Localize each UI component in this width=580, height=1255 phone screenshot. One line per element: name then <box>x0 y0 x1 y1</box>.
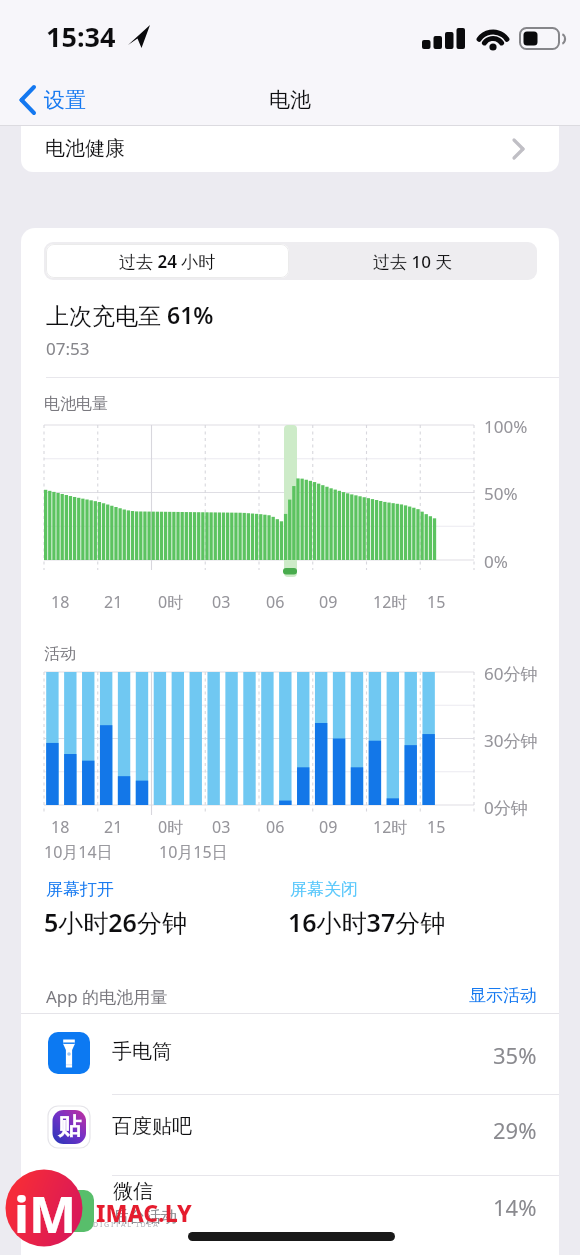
staticText: 18 <box>51 816 70 838</box>
staticText: 电池电量 <box>44 394 108 414</box>
button[interactable] <box>21 1095 559 1175</box>
staticText: 21 <box>104 591 123 613</box>
staticText: 21 <box>104 816 123 838</box>
staticText: 显示活动 <box>469 985 537 1006</box>
staticText: 15:34 <box>46 18 116 55</box>
staticText: 电池 <box>269 87 311 113</box>
staticText: 5小时26分钟 <box>44 905 187 939</box>
staticText: 18 <box>51 591 70 613</box>
staticText: 百度贴吧 <box>112 1114 192 1139</box>
staticText: 上次充电至 61% <box>46 299 214 330</box>
button[interactable]: 过去 24 小时 <box>46 244 289 278</box>
button[interactable] <box>21 1014 559 1094</box>
staticText: 设置 <box>44 87 86 113</box>
staticText: 09 <box>319 816 338 838</box>
staticText: 30分钟 <box>484 729 538 752</box>
staticText: 12时 <box>373 816 408 838</box>
staticText: 03 <box>212 591 231 613</box>
button[interactable]: 设置 <box>44 87 86 113</box>
button[interactable]: 显示活动 <box>337 985 537 1006</box>
button[interactable]: 过去 10 天 <box>291 244 535 278</box>
staticText: 0分钟 <box>484 796 528 819</box>
staticText: 贴 <box>58 1112 81 1141</box>
staticText: 60分钟 <box>484 662 538 685</box>
staticText: 15 <box>427 816 446 838</box>
staticText: 手电筒 <box>112 1039 172 1064</box>
staticText: 微信 <box>113 1179 153 1204</box>
staticText: 06 <box>266 816 285 838</box>
staticText: 10月14日 <box>44 841 113 863</box>
staticText: 15 <box>427 591 446 613</box>
button[interactable] <box>21 126 559 172</box>
staticText: 06 <box>266 591 285 613</box>
staticText: App 的电池用量 <box>46 985 168 1008</box>
staticText: 屏幕关闭 <box>290 879 358 900</box>
staticText: 0% <box>484 550 508 573</box>
staticText: 50% <box>484 482 518 505</box>
staticText: 29% <box>493 1115 537 1145</box>
staticText: 过去 24 小时 <box>119 250 216 273</box>
staticText: IMAC.LY <box>96 1197 192 1228</box>
staticText: 09 <box>319 591 338 613</box>
staticText: 后台活动 <box>113 1207 177 1227</box>
staticText: D I G I T A L I D E A <box>93 1220 158 1230</box>
staticText: 电池健康 <box>45 136 125 161</box>
staticText: 过去 10 天 <box>373 250 453 273</box>
staticText: iM <box>14 1180 77 1248</box>
staticText: 12时 <box>373 591 408 613</box>
staticText: 35% <box>493 1040 537 1070</box>
staticText: 10月15日 <box>159 841 228 863</box>
staticText: 0时 <box>158 591 184 613</box>
staticText: 0时 <box>158 816 184 838</box>
staticText: 07:53 <box>46 337 90 360</box>
staticText: 100% <box>484 415 528 438</box>
staticText: 16小时37分钟 <box>288 905 446 939</box>
staticText: 活动 <box>44 644 76 664</box>
staticText: 03 <box>212 816 231 838</box>
button[interactable] <box>21 1176 559 1255</box>
staticText: 屏幕打开 <box>46 879 114 900</box>
staticText: 14% <box>493 1192 537 1222</box>
